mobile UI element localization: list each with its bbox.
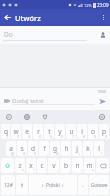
staticText: '	[45, 168, 46, 173]
staticText: p	[102, 127, 106, 136]
staticText: 9	[94, 134, 97, 139]
button[interactable]: b	[60, 158, 71, 173]
button[interactable]: j	[72, 141, 82, 156]
button[interactable]: Shift	[1, 158, 14, 173]
button[interactable]: w	[11, 124, 21, 139]
staticText: 23:09	[97, 2, 109, 8]
staticText: r	[37, 127, 40, 136]
staticText: v	[52, 161, 56, 170]
staticText: n	[75, 161, 80, 170]
button[interactable]: Więcej opcji	[98, 12, 109, 23]
staticText: b	[64, 161, 68, 170]
button[interactable]: z	[15, 158, 25, 173]
staticText: s	[20, 144, 24, 153]
staticText: !	[81, 168, 82, 173]
button[interactable]: d	[28, 141, 38, 156]
staticText: -	[68, 151, 70, 156]
button[interactable]: y	[55, 124, 65, 139]
button[interactable]: Mikrofon	[16, 175, 28, 195]
button[interactable]: g	[50, 141, 60, 156]
staticText: d	[31, 144, 35, 153]
staticText: SMS	[98, 89, 107, 94]
staticText: Utwórz	[15, 13, 41, 23]
staticText: 4	[39, 134, 42, 139]
staticText: e	[25, 127, 29, 136]
staticText: ?	[92, 168, 94, 173]
staticText: )	[101, 151, 103, 156]
button[interactable]: Dodaj kontakt	[97, 29, 109, 41]
staticText: ›	[62, 182, 64, 189]
button[interactable]: Dodaj załącznik	[2, 96, 12, 106]
staticText: w	[13, 127, 19, 136]
button[interactable]: Wstecz	[2, 12, 13, 23]
staticText: j	[76, 144, 78, 153]
button[interactable]: e	[22, 124, 32, 139]
staticText: z	[18, 161, 22, 170]
staticText: 5	[50, 134, 53, 139]
button[interactable]: Wyślij	[97, 96, 108, 107]
staticText: ‹	[42, 182, 44, 189]
staticText: o	[91, 127, 95, 136]
staticText: 6	[61, 134, 64, 139]
staticText: m	[86, 161, 93, 170]
staticText: h	[64, 144, 69, 153]
staticText: 8	[83, 134, 86, 139]
staticText: k	[86, 144, 90, 153]
button[interactable]: ‹	[29, 175, 77, 195]
button[interactable]: r	[33, 124, 43, 139]
button[interactable]: k	[83, 141, 93, 156]
button[interactable]: .	[78, 175, 88, 195]
button[interactable]: GIF	[22, 112, 31, 121]
button[interactable]: v	[48, 158, 59, 173]
staticText: t	[48, 127, 51, 136]
button[interactable]: Ustawienia	[40, 112, 49, 121]
staticText: *	[22, 168, 24, 173]
staticText: f	[43, 144, 46, 153]
staticText: Gotowe	[91, 182, 108, 188]
button[interactable]: Emotikony	[97, 112, 106, 121]
staticText: ;	[69, 168, 70, 173]
staticText: :	[57, 168, 58, 173]
button[interactable]: o	[88, 124, 98, 139]
staticText: Dodaj tekst	[12, 97, 44, 105]
staticText: &	[56, 151, 59, 156]
staticText: +	[78, 151, 81, 156]
button[interactable]: Backspace	[96, 158, 109, 173]
staticText: 3	[28, 134, 31, 139]
button[interactable]: m	[84, 158, 95, 173]
button[interactable]: x	[26, 158, 36, 173]
staticText: "	[33, 168, 35, 173]
button[interactable]: n	[72, 158, 83, 173]
staticText: 12%	[84, 3, 92, 8]
button[interactable]: 12#	[1, 175, 15, 195]
staticText: q	[4, 127, 8, 136]
button[interactable]: i	[77, 124, 87, 139]
staticText: 2	[17, 134, 20, 139]
button[interactable]: p	[99, 124, 109, 139]
button[interactable]: Gotowe	[89, 175, 109, 195]
staticText: a	[9, 144, 13, 153]
staticText: 1	[6, 134, 9, 139]
staticText: Polski	[46, 182, 60, 189]
staticText: #	[23, 151, 26, 156]
staticText: .	[82, 181, 84, 189]
staticText: 12#	[4, 182, 13, 189]
staticText: (	[90, 151, 92, 156]
button[interactable]: t	[44, 124, 54, 139]
staticText: u	[69, 127, 74, 136]
button[interactable]: c	[37, 158, 47, 173]
button[interactable]: l	[94, 141, 104, 156]
button[interactable]: h	[61, 141, 71, 156]
staticText: l	[98, 144, 100, 153]
staticText: @	[11, 151, 15, 156]
staticText: i	[81, 127, 83, 136]
button[interactable]: Naklejki	[4, 112, 13, 121]
staticText: _	[46, 151, 48, 156]
button[interactable]: q	[1, 124, 10, 139]
button[interactable]: f	[39, 141, 49, 156]
button[interactable]: a	[6, 141, 16, 156]
button[interactable]: u	[66, 124, 76, 139]
button[interactable]: s	[17, 141, 27, 156]
staticText: x	[29, 161, 33, 170]
staticText: y	[58, 127, 62, 136]
